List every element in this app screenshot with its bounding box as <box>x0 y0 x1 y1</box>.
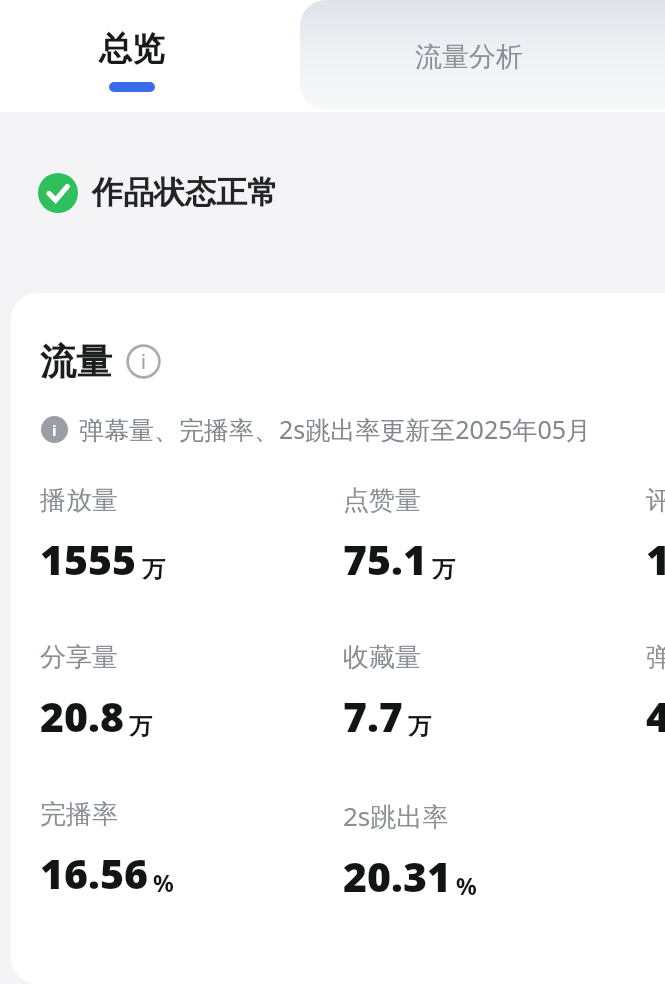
button[interactable]: 点赞量 <box>343 484 633 587</box>
staticText: 2s跳出率 <box>343 798 449 834</box>
staticText: 完播率 <box>40 798 118 831</box>
staticText: 万 <box>408 712 431 741</box>
staticText: 流量 <box>40 339 112 384</box>
staticText: 75.1 <box>343 531 427 587</box>
staticText: % <box>456 870 477 901</box>
staticText: i <box>52 420 57 440</box>
staticText: 作品状态正常 <box>92 173 278 212</box>
staticText: % <box>153 867 174 898</box>
staticText: 万 <box>142 555 165 584</box>
staticText: 万 <box>129 712 152 741</box>
staticText: 评论量 <box>646 484 665 517</box>
button[interactable]: 弹幕量 <box>646 641 665 744</box>
staticText: 16.56 <box>40 845 148 901</box>
button[interactable]: 播放量 <box>40 484 330 587</box>
button[interactable]: 完播率 <box>40 798 330 901</box>
staticText: i <box>141 349 146 375</box>
staticText: 播放量 <box>40 484 118 517</box>
button[interactable]: 流量 <box>40 339 161 384</box>
staticText: 点赞量 <box>343 484 421 517</box>
other: 流量说明 <box>126 344 161 379</box>
staticText: 分享量 <box>40 641 118 674</box>
button[interactable]: 2s跳出率 <box>343 798 633 904</box>
button[interactable]: 评论量 <box>646 484 665 587</box>
staticText: 20.8 <box>40 688 124 744</box>
staticText: 1555 <box>40 531 137 587</box>
staticText: 7.7 <box>343 688 403 744</box>
staticText: 流量分析 <box>415 40 523 74</box>
staticText: 13.2 <box>646 531 665 587</box>
button[interactable]: 流量分析 <box>300 0 665 110</box>
staticText: 收藏量 <box>343 641 421 674</box>
button[interactable]: 收藏量 <box>343 641 633 744</box>
staticText: 20.31 <box>343 848 451 904</box>
button[interactable]: 分享量 <box>40 641 330 744</box>
staticText: 万 <box>432 555 455 584</box>
button[interactable]: 总览 <box>0 0 300 112</box>
staticText: 4.1 <box>646 688 665 744</box>
staticText: 总览 <box>99 28 165 70</box>
staticText: 弹幕量 <box>646 641 665 674</box>
staticText: 弹幕量、完播率、2s跳出率更新至2025年05月 <box>79 412 592 446</box>
